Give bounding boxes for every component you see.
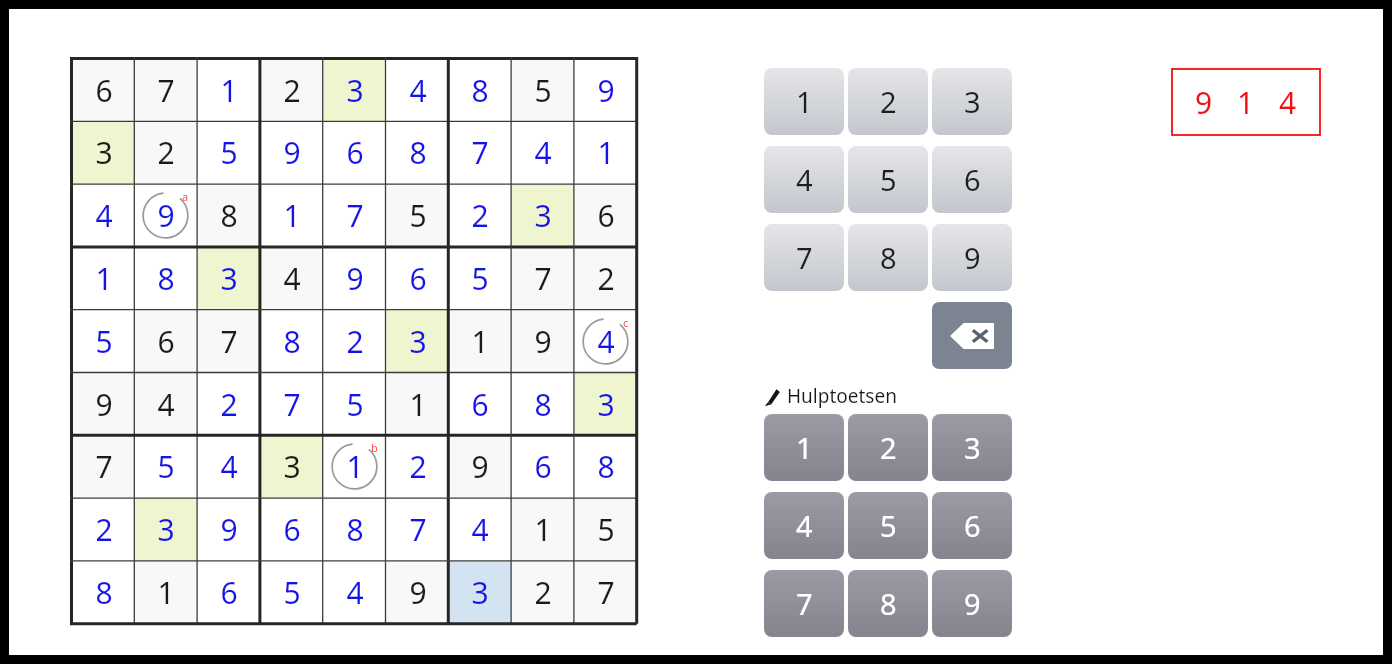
- button[interactable]: 4: [764, 492, 844, 559]
- button[interactable]: 5: [134, 435, 197, 498]
- button[interactable]: 4: [323, 561, 386, 624]
- button[interactable]: 9: [134, 184, 197, 247]
- button[interactable]: 7: [448, 121, 511, 184]
- button[interactable]: 4: [764, 146, 844, 213]
- button[interactable]: 8: [260, 310, 323, 373]
- button[interactable]: 8: [197, 184, 260, 247]
- button[interactable]: 8: [72, 561, 135, 624]
- button[interactable]: 6: [932, 146, 1012, 213]
- button[interactable]: 2: [386, 435, 449, 498]
- button[interactable]: 7: [511, 247, 574, 310]
- button[interactable]: 2: [72, 498, 135, 561]
- button[interactable]: 5: [72, 310, 135, 373]
- button[interactable]: 5: [848, 492, 928, 559]
- button[interactable]: 4: [574, 310, 637, 373]
- button[interactable]: 3: [932, 414, 1012, 481]
- button[interactable]: 8: [574, 435, 637, 498]
- button[interactable]: 2: [323, 310, 386, 373]
- button[interactable]: 9: [932, 570, 1012, 637]
- button[interactable]: 4: [386, 59, 449, 122]
- button[interactable]: 6: [448, 373, 511, 436]
- button[interactable]: 3: [260, 435, 323, 498]
- button[interactable]: 9: [72, 373, 135, 436]
- button[interactable]: 7: [323, 184, 386, 247]
- button[interactable]: 8: [386, 121, 449, 184]
- button[interactable]: 7: [72, 435, 135, 498]
- button[interactable]: 7: [134, 59, 197, 122]
- button[interactable]: 5: [197, 121, 260, 184]
- button[interactable]: 1: [448, 310, 511, 373]
- button[interactable]: 7: [764, 224, 844, 291]
- button[interactable]: 8: [848, 224, 928, 291]
- button[interactable]: 5: [448, 247, 511, 310]
- button[interactable]: 6: [72, 59, 135, 122]
- button[interactable]: 3: [932, 68, 1012, 135]
- button[interactable]: 5: [323, 373, 386, 436]
- button[interactable]: 1: [764, 68, 844, 135]
- button[interactable]: 6: [134, 310, 197, 373]
- button[interactable]: 3: [511, 184, 574, 247]
- button[interactable]: 5: [260, 561, 323, 624]
- button[interactable]: 1: [574, 121, 637, 184]
- button[interactable]: 4: [511, 121, 574, 184]
- button[interactable]: 9: [323, 247, 386, 310]
- button[interactable]: 2: [448, 184, 511, 247]
- button[interactable]: 9: [386, 561, 449, 624]
- button[interactable]: 7: [386, 498, 449, 561]
- button[interactable]: 8: [511, 373, 574, 436]
- button[interactable]: 5: [386, 184, 449, 247]
- button[interactable]: 2: [848, 68, 928, 135]
- button[interactable]: 6: [197, 561, 260, 624]
- button[interactable]: 6: [932, 492, 1012, 559]
- button[interactable]: 9: [932, 224, 1012, 291]
- button[interactable]: 2: [848, 414, 928, 481]
- button[interactable]: 9: [197, 498, 260, 561]
- button[interactable]: 6: [323, 121, 386, 184]
- button[interactable]: 3: [197, 247, 260, 310]
- button[interactable]: 8: [134, 247, 197, 310]
- button[interactable]: 1: [511, 498, 574, 561]
- button[interactable]: 2: [197, 373, 260, 436]
- button[interactable]: 9: [1172, 69, 1320, 135]
- button[interactable]: 9: [511, 310, 574, 373]
- button[interactable]: 4: [197, 435, 260, 498]
- button[interactable]: 2: [134, 121, 197, 184]
- button[interactable]: 3: [134, 498, 197, 561]
- button[interactable]: 1: [134, 561, 197, 624]
- button[interactable]: 7: [260, 373, 323, 436]
- button[interactable]: 4: [448, 498, 511, 561]
- button[interactable]: 7: [764, 570, 844, 637]
- button[interactable]: 1: [764, 414, 844, 481]
- button[interactable]: 8: [848, 570, 928, 637]
- button[interactable]: 5: [511, 59, 574, 122]
- button[interactable]: 3: [448, 561, 511, 624]
- button[interactable]: 3: [574, 373, 637, 436]
- button[interactable]: 2: [511, 561, 574, 624]
- button[interactable]: 2: [260, 59, 323, 122]
- button[interactable]: 4: [260, 247, 323, 310]
- button[interactable]: 2: [574, 247, 637, 310]
- button[interactable]: 3: [386, 310, 449, 373]
- button[interactable]: 8: [323, 498, 386, 561]
- button[interactable]: 7: [197, 310, 260, 373]
- button[interactable]: 3: [323, 59, 386, 122]
- button[interactable]: 3: [72, 121, 135, 184]
- button[interactable]: 1: [323, 435, 386, 498]
- button[interactable]: 5: [574, 498, 637, 561]
- button[interactable]: 9: [260, 121, 323, 184]
- button[interactable]: 1: [197, 59, 260, 122]
- button[interactable]: 6: [260, 498, 323, 561]
- button[interactable]: 4: [72, 184, 135, 247]
- button[interactable]: Backspace: [932, 302, 1012, 369]
- button[interactable]: 6: [386, 247, 449, 310]
- button[interactable]: 6: [574, 184, 637, 247]
- button[interactable]: 1: [386, 373, 449, 436]
- button[interactable]: 6: [511, 435, 574, 498]
- button[interactable]: 4: [134, 373, 197, 436]
- button[interactable]: 9: [448, 435, 511, 498]
- button[interactable]: 8: [448, 59, 511, 122]
- button[interactable]: 7: [574, 561, 637, 624]
- button[interactable]: 1: [72, 247, 135, 310]
- button[interactable]: 1: [260, 184, 323, 247]
- button[interactable]: 5: [848, 146, 928, 213]
